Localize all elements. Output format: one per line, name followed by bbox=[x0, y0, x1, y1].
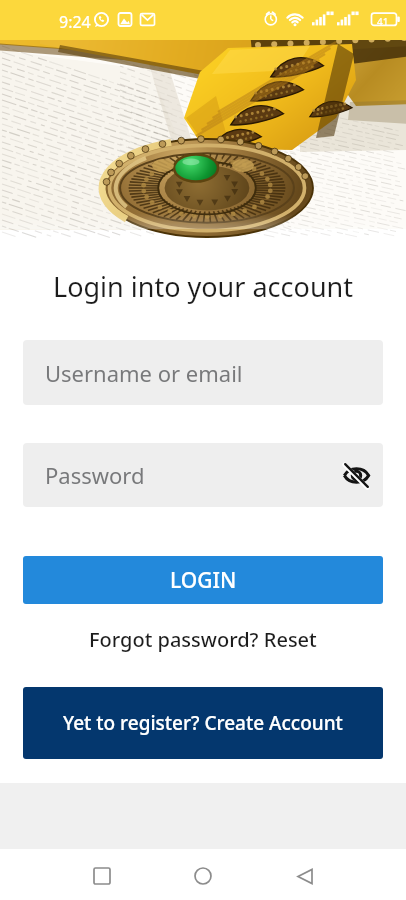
button[interactable]: Back bbox=[287, 858, 323, 894]
button[interactable]: LOGIN bbox=[23, 556, 383, 604]
button[interactable]: Forgot password? Reset bbox=[0, 625, 406, 654]
staticText: LOGIN bbox=[170, 566, 237, 595]
button[interactable]: Show password bbox=[342, 461, 370, 489]
staticText: Login into your account bbox=[53, 268, 353, 305]
staticText: Yet to register? Create Account bbox=[63, 710, 343, 736]
staticText: Password bbox=[45, 460, 145, 490]
staticText: 9:24 bbox=[59, 11, 91, 33]
button[interactable]: Recents bbox=[84, 858, 120, 894]
staticText: Username or email bbox=[45, 358, 243, 388]
button[interactable]: Yet to register? Create Account bbox=[23, 687, 383, 759]
staticText: Forgot password? Reset bbox=[89, 626, 317, 653]
staticText: 41 bbox=[377, 15, 389, 29]
button[interactable]: Home bbox=[185, 858, 221, 894]
button[interactable]: Username or email bbox=[23, 340, 383, 405]
button[interactable]: Password bbox=[23, 443, 383, 507]
